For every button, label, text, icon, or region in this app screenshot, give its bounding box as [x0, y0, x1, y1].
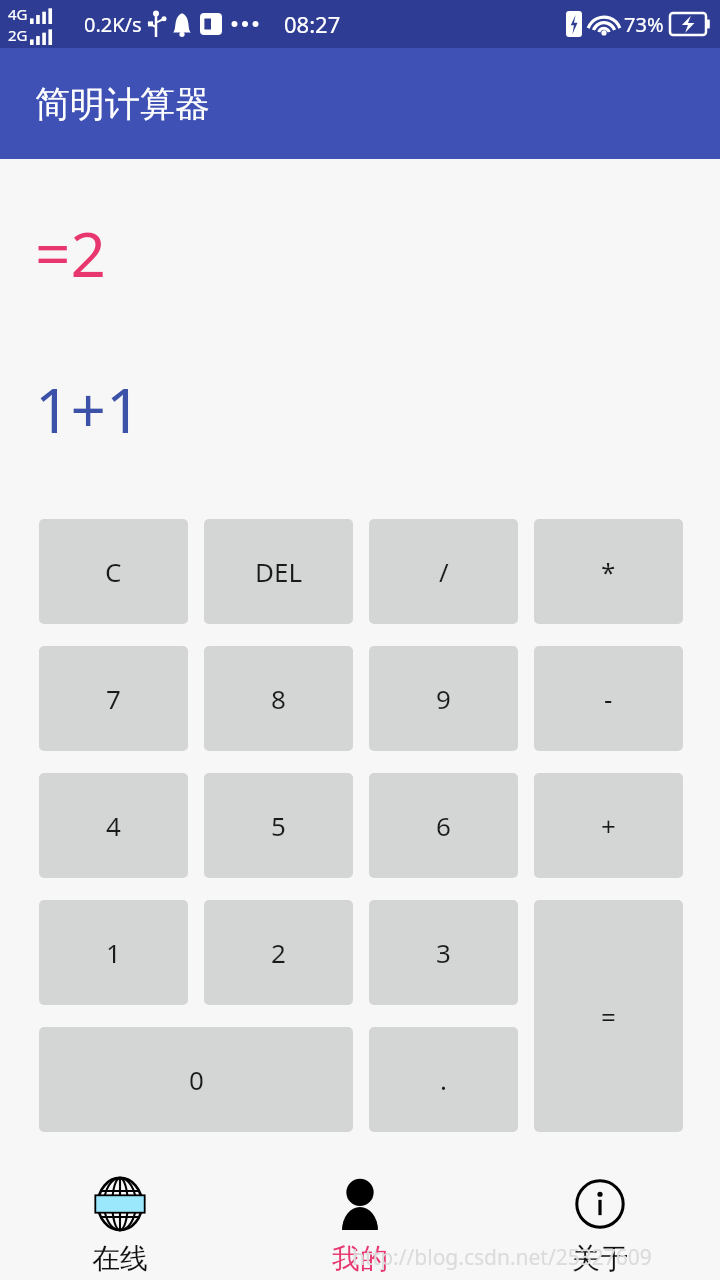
staticText: 6	[436, 808, 451, 843]
staticText: /	[439, 554, 449, 589]
staticText: =	[601, 999, 616, 1034]
button[interactable]: About	[480, 1155, 720, 1275]
button[interactable]: C	[39, 519, 188, 624]
staticText: -	[604, 681, 613, 716]
staticText: 73%	[624, 11, 664, 38]
staticText: 1+1	[35, 367, 142, 451]
button[interactable]: 3	[369, 900, 518, 1005]
button[interactable]: Online	[0, 1155, 240, 1275]
button[interactable]: 1	[39, 900, 188, 1005]
button[interactable]: 9	[369, 646, 518, 751]
staticText: 7	[106, 681, 121, 716]
staticText: 0	[189, 1062, 204, 1097]
staticText: 在线	[92, 1241, 148, 1275]
button[interactable]: +	[534, 773, 683, 878]
button[interactable]: 6	[369, 773, 518, 878]
staticText: 2G	[8, 25, 28, 45]
button[interactable]: .	[369, 1027, 518, 1132]
button[interactable]: 4	[39, 773, 188, 878]
staticText: C	[105, 554, 122, 589]
staticText: +	[601, 808, 616, 843]
button[interactable]: DEL	[204, 519, 353, 624]
staticText: 1	[106, 935, 121, 970]
staticText: 0.2K/s	[84, 11, 142, 38]
button[interactable]: Mine	[240, 1155, 480, 1275]
button[interactable]: 5	[204, 773, 353, 878]
staticText: http://blog.csdn.net/25327609	[352, 1243, 652, 1272]
button[interactable]: *	[534, 519, 683, 624]
button[interactable]: -	[534, 646, 683, 751]
staticText: 2	[271, 935, 286, 970]
staticText: 08:27	[284, 9, 341, 39]
staticText: .	[440, 1062, 447, 1097]
staticText: 我的	[332, 1241, 388, 1275]
staticText: 4G	[8, 4, 28, 24]
staticText: 关于	[572, 1241, 628, 1275]
staticText: DEL	[255, 554, 303, 589]
button[interactable]: 2	[204, 900, 353, 1005]
staticText: 5	[271, 808, 286, 843]
button[interactable]: 7	[39, 646, 188, 751]
button[interactable]: /	[369, 519, 518, 624]
button[interactable]: 0	[39, 1027, 353, 1132]
staticText: =2	[35, 211, 106, 295]
staticText: 9	[436, 681, 451, 716]
staticText: 3	[436, 935, 451, 970]
staticText: 8	[271, 681, 286, 716]
button[interactable]: 8	[204, 646, 353, 751]
button[interactable]: =	[534, 900, 683, 1132]
staticText: 简明计算器	[35, 82, 210, 126]
staticText: *	[601, 554, 616, 589]
staticText: 4	[106, 808, 121, 843]
